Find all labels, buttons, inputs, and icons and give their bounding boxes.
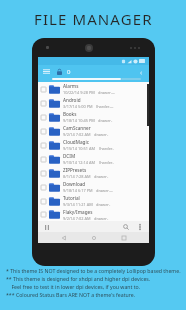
staticText: 0 xyxy=(67,68,71,76)
staticText: Flaky/Images xyxy=(63,209,93,215)
button[interactable]: Books xyxy=(38,110,149,124)
button[interactable]: CloudMagic xyxy=(38,138,149,152)
staticText: 3/17/14 5:00 PM xyxy=(63,104,93,109)
staticText: 9/2/14 7:02 AM xyxy=(63,216,91,221)
staticText: drawer- xyxy=(96,202,111,207)
button[interactable]: Menu xyxy=(42,67,51,76)
staticText: 9/3/14 11:21 AM xyxy=(63,202,93,207)
button[interactable]: Download xyxy=(38,180,149,194)
button[interactable]: Search xyxy=(121,222,130,231)
staticText: DCIM xyxy=(63,153,76,159)
staticText: 9/15/14 10:51 AM xyxy=(63,146,96,151)
staticText: Alarms xyxy=(63,83,79,89)
staticText: CamScanner xyxy=(63,125,91,131)
staticText: 9/10/14 12:14 AM xyxy=(63,160,96,165)
staticText: 9/18/14 10:45 PM xyxy=(63,118,95,123)
button[interactable]: Alarms xyxy=(38,82,149,96)
button[interactable]: Android xyxy=(38,96,149,110)
staticText: 9/2/14 7:02 AM xyxy=(63,132,91,137)
staticText: Android xyxy=(63,97,81,103)
button[interactable]: Flaky/Images xyxy=(38,208,149,221)
button[interactable]: Sort xyxy=(43,223,51,231)
staticText: ** This theme is designed for xhdpi and … xyxy=(6,275,151,282)
button[interactable]: DCIM xyxy=(38,152,149,166)
staticText: drawer- xyxy=(94,174,109,179)
staticText: drawer- xyxy=(94,216,109,221)
staticText: Books xyxy=(63,111,77,117)
button[interactable]: More xyxy=(137,68,145,76)
staticText: drawer— xyxy=(96,188,113,193)
staticText: FILE MANAGER xyxy=(34,9,153,29)
button[interactable]: ZIPPresets xyxy=(38,166,149,180)
staticText: drawer- xyxy=(98,118,113,123)
staticText: drawer- xyxy=(94,132,109,137)
staticText: ZIPPresets xyxy=(63,167,87,173)
button[interactable]: More options xyxy=(136,223,144,231)
staticText: 8/1/14 7:28 AM xyxy=(63,174,91,179)
button[interactable]: Recents xyxy=(119,233,128,242)
button[interactable]: CamScanner xyxy=(38,124,149,138)
staticText: (harder— xyxy=(96,104,114,109)
staticText: (harder- xyxy=(99,160,114,165)
staticText: 10/22/14 9:28 PM xyxy=(63,90,95,95)
staticText: drawer— xyxy=(98,90,115,95)
button[interactable]: Lock xyxy=(55,67,64,76)
staticText: 9/18/14 6:17 PM xyxy=(63,188,93,193)
button[interactable]: Tutorial xyxy=(38,194,149,208)
staticText: Feel free to test it in lower dpi device… xyxy=(6,283,141,290)
staticText: * This theme IS NOT designed to be a com… xyxy=(6,267,181,274)
staticText: *** Coloured Status Bars ARE NOT a theme… xyxy=(6,291,136,298)
button[interactable]: Home xyxy=(89,233,98,242)
staticText: Tutorial xyxy=(63,195,80,201)
staticText: (harder- xyxy=(99,146,114,151)
staticText: CloudMagic xyxy=(63,139,89,145)
button[interactable]: Back xyxy=(59,233,68,242)
staticText: ‹ xyxy=(140,68,143,76)
staticText: Download xyxy=(63,181,86,187)
